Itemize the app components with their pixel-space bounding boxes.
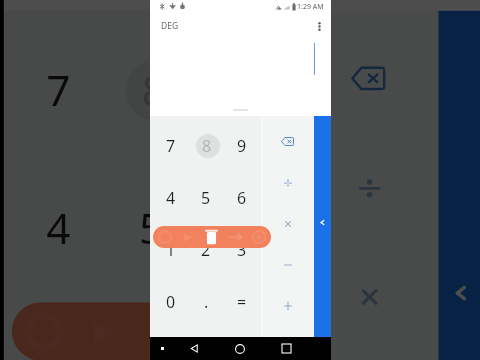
staticText: 6 — [234, 199, 261, 257]
button[interactable]: Back — [172, 337, 217, 360]
button[interactable]: 5 — [105, 159, 200, 297]
button[interactable]: 2 — [105, 297, 200, 360]
staticText: DEG — [161, 20, 179, 32]
button[interactable]: 5 — [188, 172, 224, 224]
button[interactable]: Backspace — [261, 120, 314, 162]
button[interactable]: 3 — [224, 224, 260, 276]
button[interactable]: Show advanced pad — [438, 11, 480, 360]
button[interactable]: Divide — [261, 162, 314, 203]
button[interactable]: 1 — [12, 297, 105, 360]
staticText: 2 — [139, 337, 166, 360]
button[interactable]: Screen recorder controls — [12, 302, 325, 360]
button[interactable]: 9 — [224, 120, 260, 172]
button[interactable]: Show advanced pad — [314, 116, 331, 337]
button[interactable]: 7 — [12, 21, 105, 159]
staticText: = — [237, 291, 247, 313]
button[interactable]: Screen recorder controls — [153, 226, 271, 248]
button[interactable]: Recent apps — [263, 337, 309, 360]
button[interactable]: Home — [217, 337, 263, 360]
button[interactable]: Backspace — [298, 21, 439, 133]
staticText: 0 — [166, 291, 176, 313]
staticText: 1:29 AM — [297, 2, 324, 12]
button[interactable]: 3 — [200, 297, 295, 360]
staticText: 1 — [166, 239, 176, 261]
staticText: 3 — [234, 337, 261, 360]
button[interactable]: 7 — [153, 120, 188, 172]
button[interactable]: Multiply — [261, 203, 314, 244]
staticText: 3 — [237, 239, 247, 261]
button[interactable]: = — [224, 276, 260, 328]
button[interactable]: 4 — [153, 172, 188, 224]
button[interactable]: Multiply — [298, 241, 439, 350]
staticText: 5 — [201, 187, 211, 209]
button[interactable]: More options — [311, 18, 327, 34]
staticText: 2 — [201, 239, 211, 261]
staticText: . — [204, 291, 209, 313]
button[interactable]: . — [188, 276, 224, 328]
button[interactable]: 4 — [12, 159, 105, 297]
button[interactable]: 6 — [200, 159, 295, 297]
button[interactable]: 1 — [153, 224, 188, 276]
button[interactable]: 9 — [200, 21, 295, 159]
staticText: 9 — [234, 61, 261, 119]
button[interactable]: 6 — [224, 172, 260, 224]
staticText: 9 — [237, 135, 247, 157]
staticText: 4 — [46, 199, 73, 257]
button[interactable]: Plus — [261, 285, 314, 326]
staticText: 8 — [142, 61, 168, 119]
staticText: 8 — [202, 135, 212, 157]
button[interactable]: Minus — [298, 350, 439, 360]
staticText: 4 — [166, 187, 176, 209]
button[interactable]: 8 — [105, 21, 200, 159]
button[interactable]: 0 — [153, 276, 188, 328]
button[interactable]: Divide — [298, 133, 439, 241]
staticText: 7 — [166, 135, 176, 157]
staticText: 5 — [139, 199, 166, 257]
button[interactable]: 2 — [188, 224, 224, 276]
staticText: 6 — [237, 187, 247, 209]
button[interactable]: 8 — [188, 120, 224, 172]
button[interactable]: Minus — [261, 244, 314, 285]
staticText: 7 — [46, 61, 73, 119]
